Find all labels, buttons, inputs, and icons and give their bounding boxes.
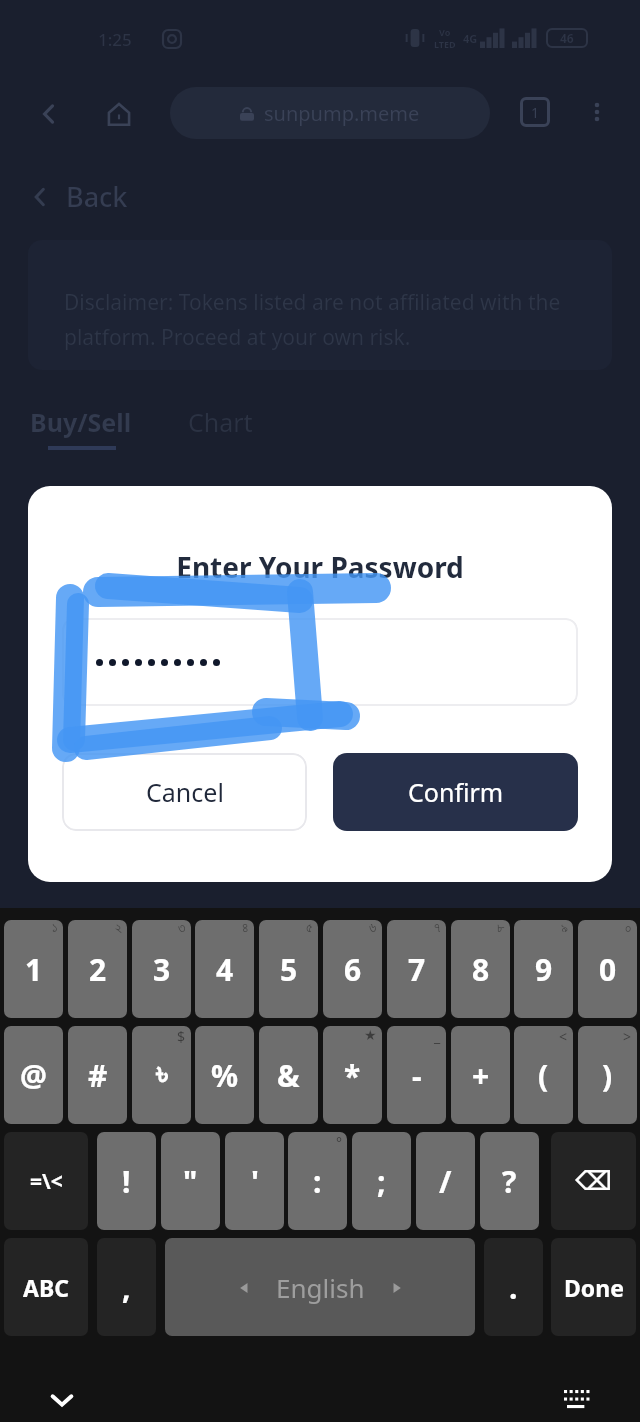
staticText: Done [564, 1272, 624, 1303]
staticText: ১ [52, 921, 58, 935]
staticText: ; [377, 1161, 386, 1202]
button[interactable]: > [578, 1026, 637, 1124]
button[interactable]: Backspace [551, 1132, 636, 1230]
staticText: 8 [472, 949, 490, 990]
staticText: 3 [153, 949, 171, 990]
staticText: ★ [364, 1027, 377, 1043]
button[interactable]: ৬ [323, 920, 382, 1018]
staticText: 9 [535, 949, 553, 990]
button[interactable]: & [259, 1026, 318, 1124]
button[interactable]: More options [578, 93, 616, 131]
button[interactable]: ৮ [451, 920, 510, 1018]
staticText: Back [66, 178, 128, 215]
staticText: * [344, 1055, 361, 1096]
staticText: 4G [463, 31, 478, 46]
staticText: 1:25 [98, 28, 132, 51]
button[interactable]: Back [30, 95, 68, 133]
staticText: " [183, 1161, 198, 1202]
staticText: 7 [408, 949, 426, 990]
button[interactable]: ২ [68, 920, 127, 1018]
button[interactable]: Done [551, 1238, 636, 1336]
staticText: ' [251, 1161, 259, 1202]
staticText: 1 [531, 103, 540, 122]
button[interactable]: Space, English [165, 1238, 475, 1336]
button[interactable]: ° [288, 1132, 347, 1230]
button[interactable]: Switch keyboard [556, 1378, 600, 1422]
button[interactable]: + [451, 1026, 510, 1124]
button[interactable]: Cancel [62, 753, 307, 831]
staticText: ( [538, 1055, 549, 1096]
staticText: ৫ [306, 921, 313, 935]
staticText: ! [122, 1161, 131, 1202]
staticText: ৳ [156, 1060, 168, 1090]
button[interactable]: =\< [4, 1132, 88, 1230]
button[interactable]: / [416, 1132, 475, 1230]
button[interactable]: , [97, 1238, 156, 1336]
staticText: 46 [560, 30, 574, 46]
staticText: $ [177, 1027, 186, 1046]
button[interactable]: ! [97, 1132, 156, 1230]
button[interactable]: Tabs [516, 93, 554, 131]
staticText: # [88, 1055, 108, 1096]
button[interactable]: ' [225, 1132, 284, 1230]
staticText: : [313, 1161, 322, 1202]
button[interactable]: ? [480, 1132, 539, 1230]
button[interactable]: ; [352, 1132, 411, 1230]
staticText: Enter Your Password [28, 548, 612, 586]
button[interactable]: ১ [4, 920, 63, 1018]
staticText: ° [336, 1133, 342, 1152]
staticText: English [276, 1270, 365, 1305]
staticText: ৬ [369, 921, 377, 935]
button[interactable]: % [195, 1026, 254, 1124]
staticText: 2 [89, 949, 107, 990]
button[interactable]: ৫ [259, 920, 318, 1018]
staticText: . [509, 1267, 518, 1308]
staticText: ? [502, 1161, 517, 1202]
staticText: ০ [625, 921, 632, 935]
staticText: Disclaimer: Tokens listed are not affili… [64, 288, 584, 351]
staticText: 4 [216, 949, 234, 990]
button[interactable]: @ [4, 1026, 63, 1124]
button[interactable]: ৩ [132, 920, 191, 1018]
button[interactable]: Home [100, 95, 138, 133]
button[interactable]: . [484, 1238, 543, 1336]
staticText: LTED [434, 38, 456, 50]
staticText: % [211, 1055, 239, 1096]
button[interactable]: < [514, 1026, 573, 1124]
button[interactable]: ★ [323, 1026, 382, 1124]
button[interactable]: $ [132, 1026, 191, 1124]
staticText: ৪ [242, 921, 249, 935]
button[interactable]: ৯ [514, 920, 573, 1018]
button[interactable]: ৭ [387, 920, 446, 1018]
staticText: @ [20, 1055, 47, 1096]
staticText: _ [434, 1027, 441, 1046]
button[interactable]: Hide keyboard [40, 1378, 84, 1422]
staticText: ) [602, 1055, 613, 1096]
button[interactable]: Confirm [333, 753, 578, 831]
staticText: & [277, 1055, 300, 1096]
staticText: ABC [23, 1272, 69, 1303]
staticText: 0 [599, 949, 617, 990]
button[interactable]: # [68, 1026, 127, 1124]
staticText: ⌫ [575, 1166, 612, 1196]
staticText: 1 [25, 949, 43, 990]
button[interactable] [62, 618, 578, 706]
staticText: Buy/Sell [30, 405, 132, 439]
button[interactable]: ০ [578, 920, 637, 1018]
staticText: + [472, 1055, 490, 1096]
staticText: / [439, 1161, 452, 1202]
button[interactable]: _ [387, 1026, 446, 1124]
staticText: Confirm [408, 775, 504, 809]
staticText: > [623, 1027, 632, 1046]
staticText: ৭ [434, 921, 441, 935]
button[interactable]: ৪ [195, 920, 254, 1018]
staticText: 5 [280, 949, 298, 990]
button[interactable]: ABC [4, 1238, 88, 1336]
staticText: Chart [188, 405, 253, 439]
staticText: sunpump.meme [264, 100, 420, 127]
staticText: ৮ [497, 921, 505, 935]
button[interactable]: " [161, 1132, 220, 1230]
staticText: ২ [115, 921, 122, 935]
staticText: < [559, 1027, 568, 1046]
button[interactable]: sunpump.meme [170, 87, 490, 139]
